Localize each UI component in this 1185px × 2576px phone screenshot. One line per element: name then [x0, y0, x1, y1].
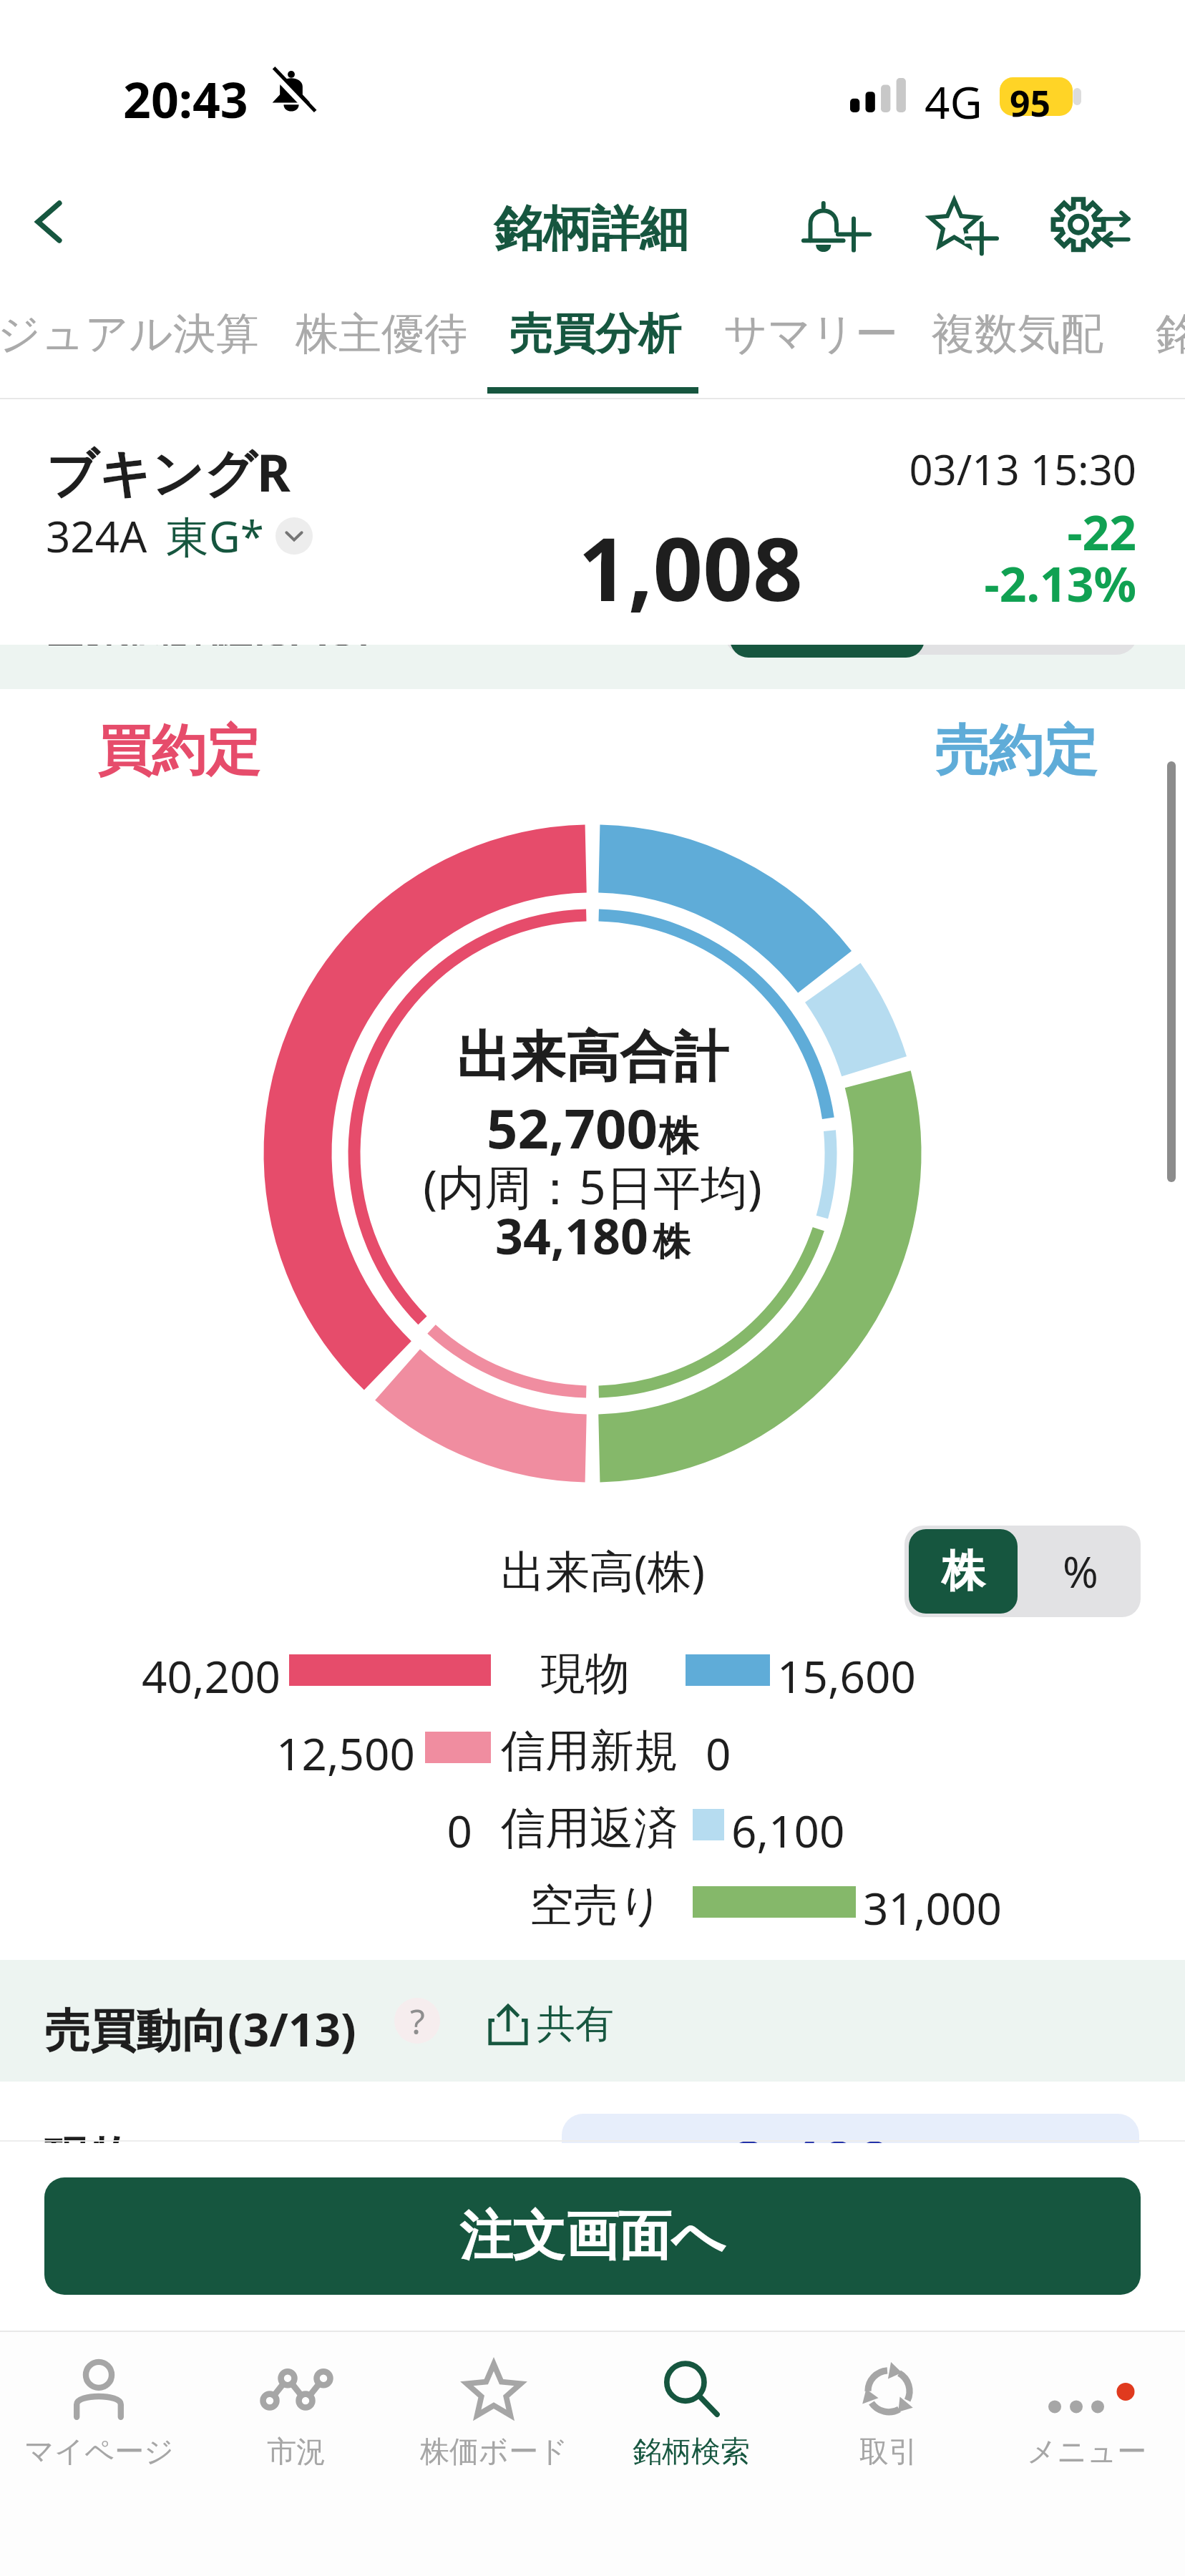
button[interactable]: マイページ — [0, 2346, 197, 2525]
staticText: 売約定 — [935, 717, 1098, 786]
button[interactable]: 市況 — [197, 2346, 395, 2525]
staticText: 31,000 — [863, 1878, 1002, 1938]
staticText: 1,008 — [578, 508, 803, 627]
staticText: 12,500 — [272, 1723, 415, 1783]
staticText: 銘 — [1156, 307, 1185, 361]
staticText: 銘柄詳細 — [494, 199, 688, 260]
staticText: 15,600 — [777, 1646, 916, 1706]
staticText: 4G — [925, 72, 982, 132]
staticText: 取引 — [859, 2434, 918, 2471]
button[interactable]: 取引 — [790, 2346, 987, 2525]
staticText: 株 — [653, 1219, 690, 1266]
staticText: 信用新規 — [501, 1723, 678, 1779]
staticText: ジュアル決算 — [0, 307, 259, 361]
staticText: ? — [410, 1998, 425, 2044]
staticText: 0 — [706, 1723, 731, 1783]
staticText: 信用返済 — [501, 1800, 678, 1856]
button[interactable]: 注文画面へ — [44, 2177, 1141, 2295]
staticText: 現物 — [541, 1646, 630, 1702]
staticText: 売買動向(3/13) — [44, 1998, 356, 2060]
staticText: 東G* — [166, 507, 264, 565]
staticText: 複数気配 — [932, 307, 1103, 361]
staticText: 6,100 — [731, 1800, 845, 1860]
staticText: 市況 — [267, 2434, 326, 2471]
staticText: 空売り — [530, 1878, 664, 1933]
staticText: 売買分析 — [509, 307, 681, 361]
button[interactable]: サマリー — [701, 286, 922, 394]
staticText: マイページ — [24, 2434, 174, 2471]
staticText: 共有 — [537, 2000, 614, 2049]
button[interactable]: Back — [6, 179, 92, 265]
button[interactable]: 共有 — [488, 2001, 614, 2050]
staticText: 出来高合計 — [457, 1023, 728, 1092]
staticText: 買約定 — [97, 717, 260, 786]
other: Silent mode — [268, 69, 315, 116]
staticText: 株 — [942, 1544, 985, 1599]
staticText: 324A — [46, 507, 147, 565]
staticText: 40,200 — [137, 1646, 281, 1706]
staticText: 52,700 — [487, 1091, 658, 1165]
staticText: -22 — [779, 499, 1136, 564]
staticText: 株価ボード — [420, 2434, 568, 2471]
staticText: 株 — [658, 1111, 698, 1162]
staticText: 出来高(株) — [501, 1540, 706, 1601]
button[interactable]: 株 — [909, 1529, 1018, 1614]
staticText: ブキングR — [46, 436, 291, 507]
staticText: 2,400 — [731, 2119, 893, 2143]
staticText: 03/13 15:30 — [779, 441, 1136, 497]
button[interactable]: 銘柄検索 — [592, 2346, 790, 2525]
button[interactable]: 株主優待 — [273, 286, 490, 394]
staticText: % — [1063, 1542, 1098, 1601]
button[interactable]: % — [1025, 1529, 1136, 1614]
staticText: 0 — [329, 1800, 472, 1860]
button[interactable]: Settings — [1043, 180, 1136, 273]
button[interactable]: More info — [275, 517, 313, 555]
button[interactable]: 複数気配 — [909, 286, 1126, 394]
staticText: 95 — [1010, 79, 1051, 117]
button[interactable]: 銘 — [1133, 286, 1185, 394]
staticText: -2.13% — [779, 551, 1136, 615]
staticText: メニュー — [1027, 2434, 1146, 2471]
button[interactable]: Add to watchlist — [916, 180, 1009, 273]
button[interactable]: Help — [394, 1998, 440, 2044]
staticText: 34,180 — [495, 1202, 648, 1269]
staticText: 現物 — [44, 2130, 136, 2143]
staticText: 株主優待 — [296, 307, 467, 361]
button[interactable]: ジュアル決算 — [0, 286, 282, 394]
staticText: サマリー — [723, 307, 899, 361]
staticText: 注文画面へ — [459, 2203, 726, 2270]
staticText: 銘柄検索 — [633, 2434, 750, 2471]
button[interactable]: Add alert — [790, 180, 883, 273]
staticText: (内周：5日平均) — [423, 1153, 762, 1218]
button[interactable]: メニュー — [987, 2346, 1185, 2525]
button[interactable]: 株価ボード — [395, 2346, 592, 2525]
button[interactable]: 売買分析 — [487, 286, 704, 394]
staticText: 20:43 — [123, 66, 248, 132]
